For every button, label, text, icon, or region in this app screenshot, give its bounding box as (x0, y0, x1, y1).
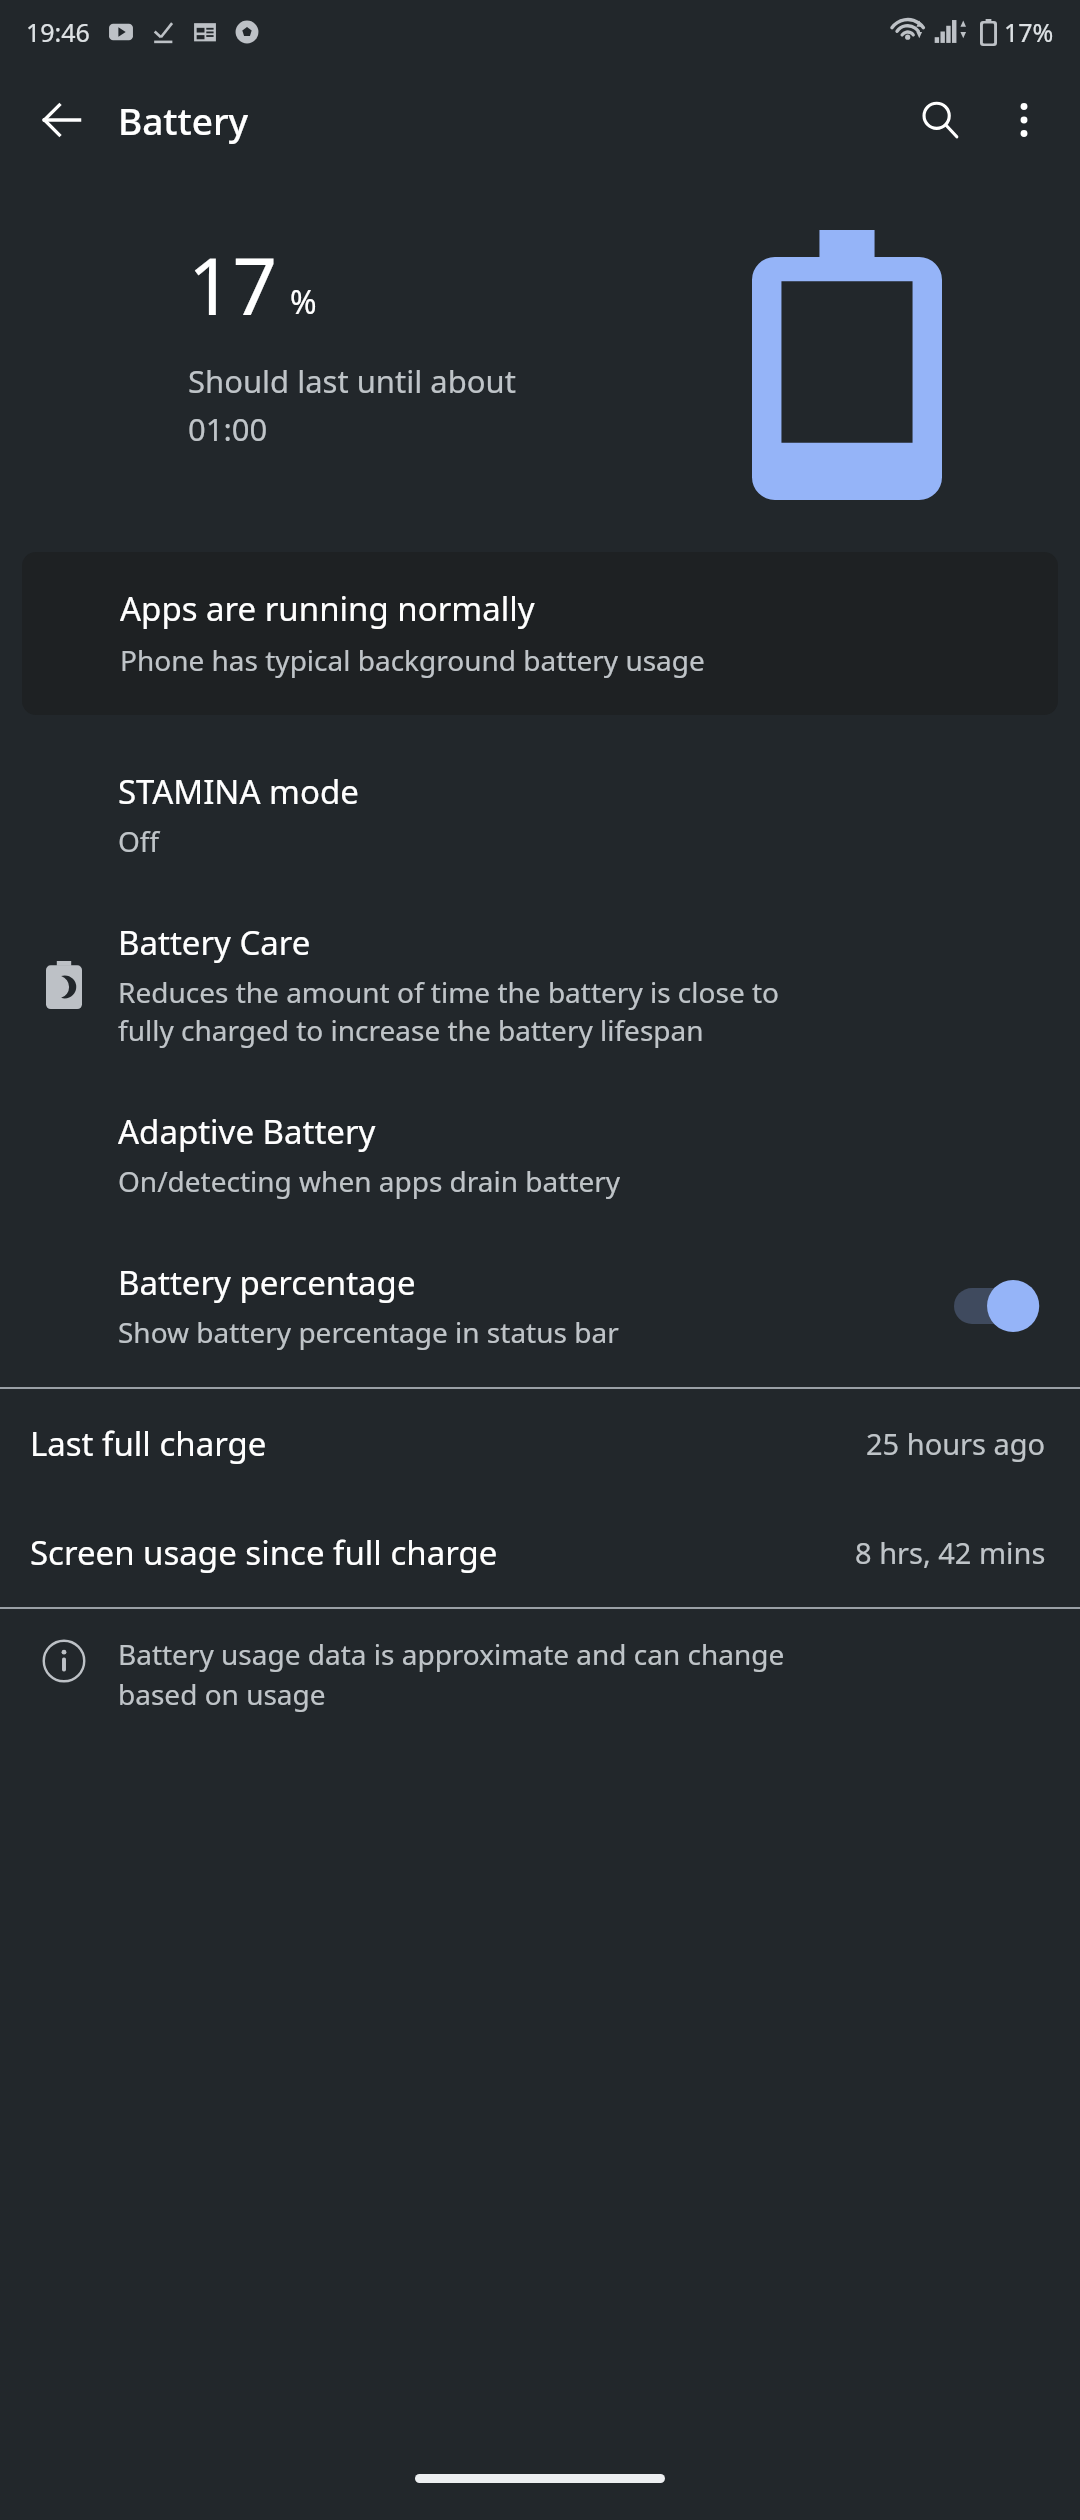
button[interactable]: Battery Care (0, 890, 1080, 1079)
staticText: On/detecting when apps drain battery (118, 1162, 621, 1200)
staticText: Off (118, 822, 160, 860)
staticText: Phone has typical background battery usa… (120, 641, 705, 679)
staticText: Battery (118, 95, 249, 145)
button[interactable]: STAMINA mode (0, 739, 1080, 890)
staticText: Screen usage since full charge (30, 1530, 498, 1575)
staticText: Reduces the amount of time the battery i… (118, 973, 779, 1049)
staticText: Show battery percentage in status bar (118, 1313, 619, 1351)
button[interactable]: More options (982, 78, 1066, 162)
staticText: Battery percentage (118, 1260, 416, 1305)
button[interactable]: Adaptive Battery (0, 1079, 1080, 1230)
staticText: Should last until about (188, 360, 516, 402)
staticText: Battery usage data is approximate and ca… (118, 1635, 785, 1714)
staticText: Battery Care (118, 920, 311, 965)
staticText: 17 (188, 232, 278, 338)
button[interactable]: Battery percentage toggle (954, 1277, 1050, 1335)
button[interactable]: Search (898, 78, 982, 162)
button[interactable]: Last full charge (0, 1389, 1080, 1498)
button[interactable]: Back (20, 78, 104, 162)
staticText: Apps are running normally (120, 586, 535, 631)
button[interactable]: Screen usage since full charge (0, 1498, 1080, 1607)
staticText: Adaptive Battery (118, 1109, 376, 1154)
staticText: 17% (1004, 15, 1054, 49)
staticText: 01:00 (188, 408, 268, 450)
staticText: 25 hours ago (866, 1424, 1046, 1463)
button[interactable]: Battery percentage (0, 1230, 1080, 1381)
staticText: 8 hrs, 42 mins (855, 1533, 1046, 1572)
staticText: % (290, 280, 317, 324)
staticText: Last full charge (30, 1421, 267, 1466)
staticText: 19:46 (26, 15, 90, 49)
staticText: STAMINA mode (118, 769, 359, 814)
button[interactable]: Apps are running normally (22, 552, 1058, 715)
